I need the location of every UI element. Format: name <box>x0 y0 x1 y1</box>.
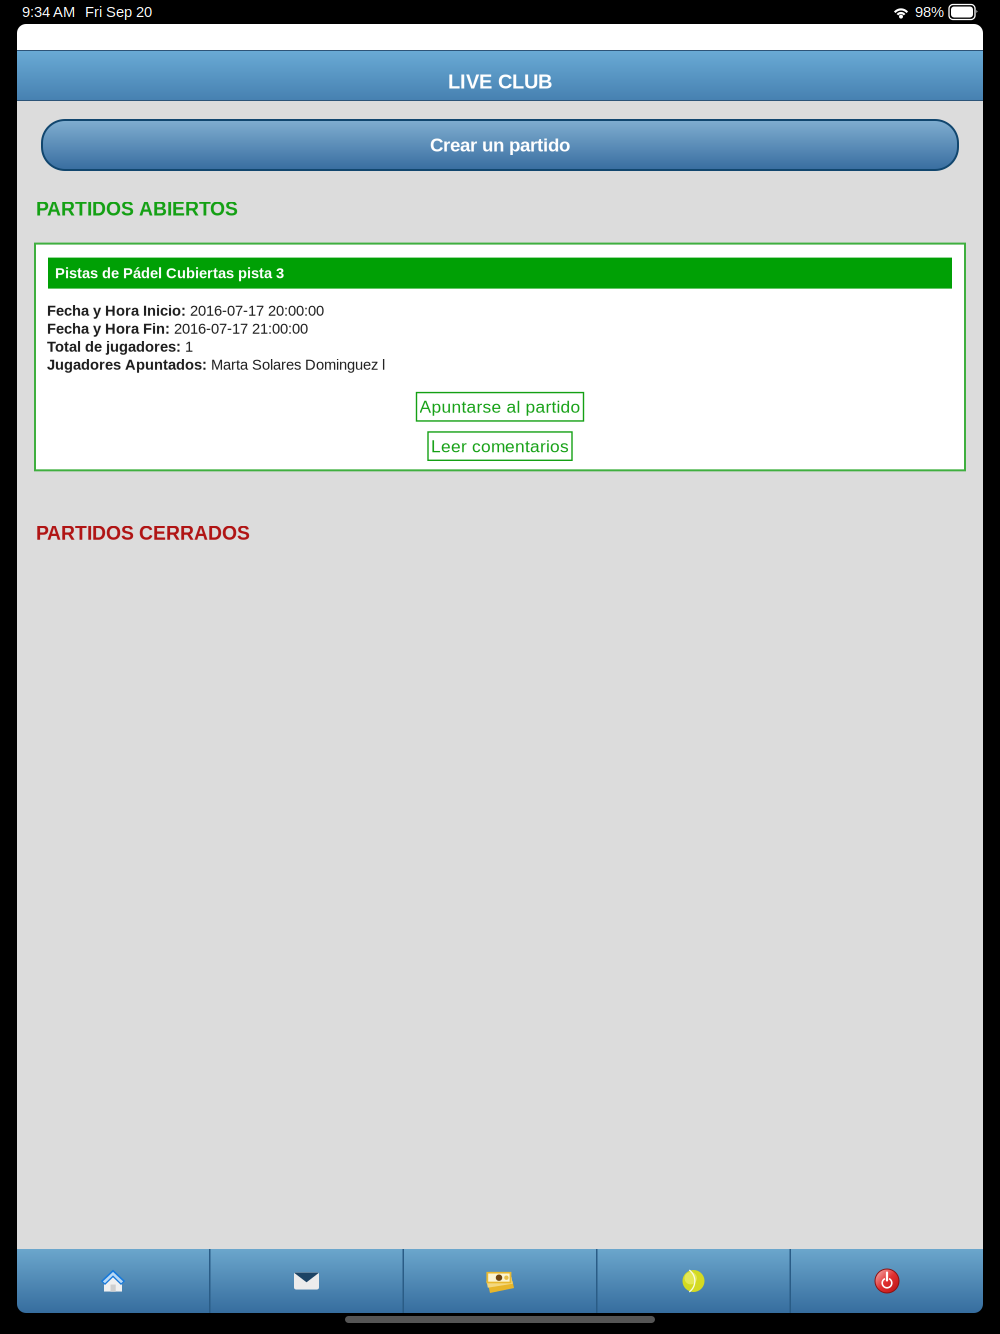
staticText: 2016-07-17 20:00:00 <box>186 302 324 319</box>
button[interactable]: Home <box>17 1249 209 1313</box>
staticText: Jugadores Apuntados: <box>47 356 207 373</box>
button[interactable]: Messages <box>210 1249 402 1313</box>
button[interactable]: Crear un partido <box>42 120 958 170</box>
staticText: Crear un partido <box>430 135 570 155</box>
staticText: 1 <box>181 338 193 355</box>
staticText: Fecha y Hora Inicio: <box>47 302 186 319</box>
button[interactable]: Apuntarse al partido <box>416 393 583 421</box>
staticText: 9:34 AM <box>22 4 75 20</box>
staticText: 2016-07-17 21:00:00 <box>170 320 308 337</box>
staticText: Fecha y Hora Fin: <box>47 320 170 337</box>
staticText: Marta Solares Dominguez l <box>207 356 385 373</box>
button[interactable]: Payments <box>404 1249 596 1313</box>
staticText: Apuntarse al partido <box>419 397 580 416</box>
staticText: PARTIDOS ABIERTOS <box>36 198 238 220</box>
button[interactable]: Matches <box>597 1249 789 1313</box>
staticText: LIVE CLUB <box>448 70 552 93</box>
staticText: PARTIDOS CERRADOS <box>36 522 250 544</box>
button[interactable]: Leer comentarios <box>428 432 572 460</box>
staticText: Pistas de Pádel Cubiertas pista 3 <box>55 265 284 281</box>
staticText: Leer comentarios <box>431 436 569 456</box>
staticText: Total de jugadores: <box>47 338 181 355</box>
staticText: 98% <box>915 4 944 20</box>
staticText: Fri Sep 20 <box>85 4 152 20</box>
button[interactable]: Log out <box>791 1249 983 1313</box>
